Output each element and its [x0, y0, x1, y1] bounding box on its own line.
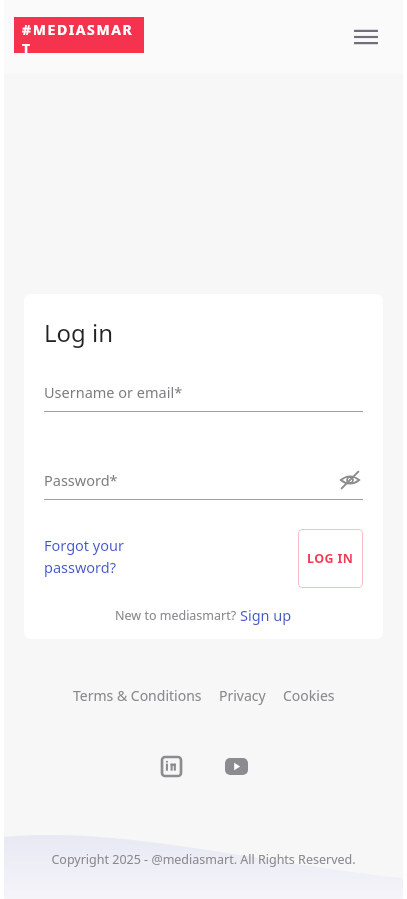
button[interactable]: mediasmart logo — [14, 17, 144, 53]
button[interactable]: Cookies — [281, 686, 337, 705]
button[interactable]: LinkedIn — [154, 749, 188, 783]
button[interactable]: Menu — [349, 20, 383, 54]
button[interactable]: Username or email* — [44, 382, 363, 412]
staticText: Copyright 2025 - @mediasmart. All Rights… — [51, 851, 356, 868]
button[interactable]: Privacy — [217, 686, 268, 705]
staticText: Password* — [44, 470, 118, 490]
button[interactable]: YouTube — [219, 749, 253, 783]
staticText: #MEDIASMART — [22, 20, 138, 53]
button[interactable]: LOG IN — [298, 529, 363, 588]
button[interactable]: Forgot your password? — [44, 529, 164, 577]
staticText: Log in — [44, 316, 114, 349]
staticText: Forgot your password? — [44, 535, 164, 577]
staticText: LOG IN — [307, 550, 354, 567]
staticText: New to mediasmart? — [115, 607, 240, 624]
staticText: Terms & Conditions — [73, 686, 202, 705]
staticText: Username or email* — [44, 382, 183, 402]
staticText: Privacy — [219, 686, 266, 705]
button[interactable]: Password* — [44, 467, 363, 500]
button[interactable]: Sign up — [240, 605, 292, 625]
button[interactable]: Show password — [337, 467, 363, 493]
button[interactable]: Terms & Conditions — [71, 686, 204, 705]
staticText: Cookies — [283, 686, 335, 705]
staticText: Sign up — [240, 605, 292, 625]
